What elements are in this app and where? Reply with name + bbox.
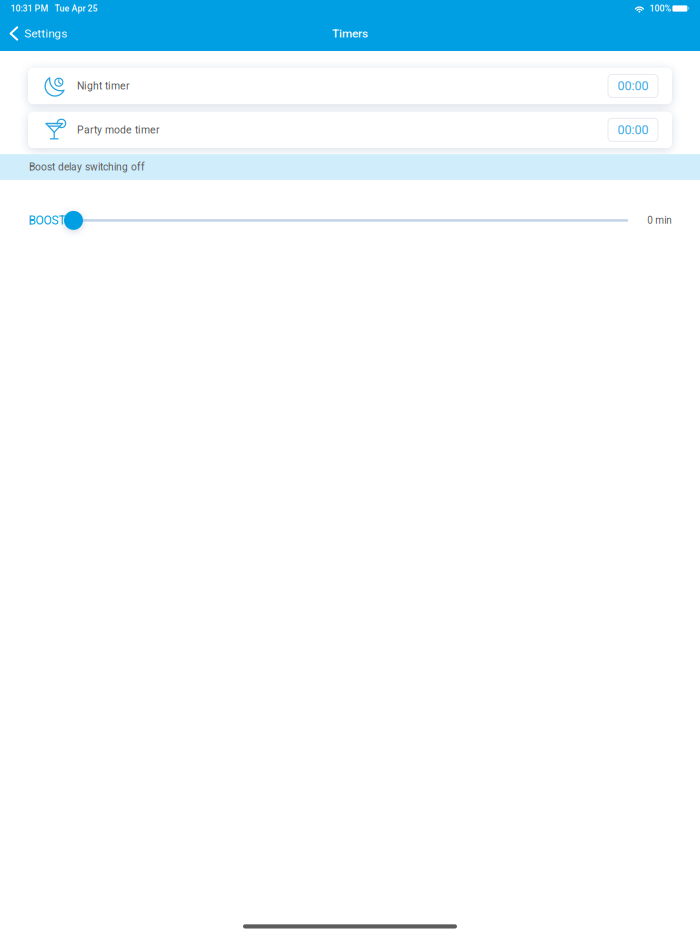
staticText: Night timer — [77, 80, 130, 92]
button[interactable]: Party mode timer — [28, 112, 672, 148]
staticText: 00:00 — [617, 79, 648, 93]
staticText: 100% — [649, 3, 670, 14]
staticText: Timers — [332, 27, 368, 40]
staticText: 10:31 PM Tue Apr 25 — [10, 3, 97, 14]
staticText: Settings — [24, 27, 67, 40]
staticText: BOOST — [28, 213, 65, 227]
button[interactable]: Night timer — [28, 68, 672, 104]
staticText: Party mode timer — [77, 124, 160, 136]
staticText: 00:00 — [617, 122, 648, 137]
staticText: 0 min — [647, 214, 672, 226]
button[interactable]: Settings — [0, 20, 75, 46]
staticText: Boost delay switching off — [29, 161, 145, 173]
